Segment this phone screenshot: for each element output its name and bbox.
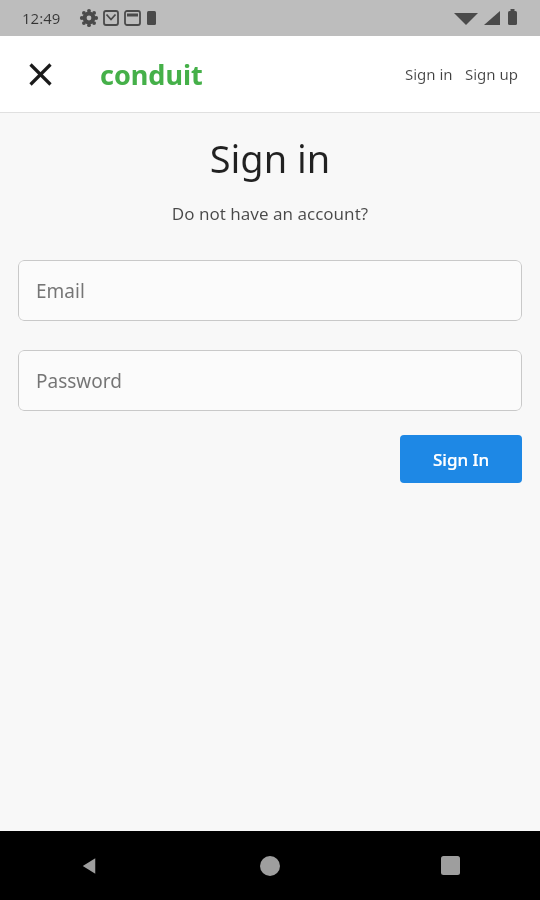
staticText: Email: [36, 278, 85, 304]
staticText: Sign in: [0, 132, 540, 184]
staticText: Sign In: [433, 448, 490, 471]
staticText: Sign up: [465, 64, 518, 84]
button[interactable]: Password: [18, 350, 522, 411]
staticText: Password: [36, 368, 122, 394]
staticText: 12:49: [22, 8, 61, 28]
button[interactable]: Home: [180, 831, 360, 900]
button[interactable]: Sign up: [459, 54, 524, 94]
button[interactable]: Do not have an account?: [0, 202, 540, 225]
button[interactable]: Email: [18, 260, 522, 321]
button[interactable]: Recent apps: [360, 831, 540, 900]
button[interactable]: conduit: [100, 56, 203, 93]
button[interactable]: Close: [16, 50, 64, 98]
button[interactable]: Sign in: [399, 54, 459, 94]
button[interactable]: Sign In: [400, 435, 522, 483]
staticText: Sign in: [405, 64, 453, 84]
button[interactable]: Back: [0, 831, 180, 900]
